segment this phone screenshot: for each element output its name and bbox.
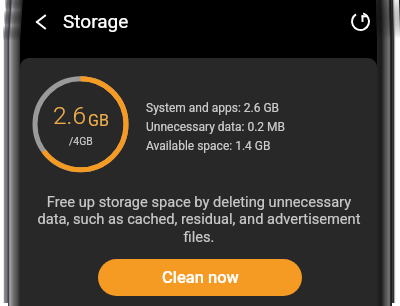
staticText: GB [88, 111, 109, 130]
button[interactable]: Refresh [344, 4, 377, 37]
button[interactable]: Back [24, 5, 57, 38]
staticText: Unnecessary data: 0.2 MB [146, 120, 285, 134]
button[interactable]: Clean now [98, 259, 302, 296]
staticText: Storage [63, 10, 129, 32]
staticText: Available space: 1.4 GB [146, 139, 271, 153]
staticText: System and apps: 2.6 GB [146, 101, 280, 115]
staticText: /4GB [69, 135, 93, 147]
staticText: Clean now [162, 268, 239, 287]
staticText: Free up storage space by deleting unnece… [34, 193, 364, 246]
staticText: 2.6 [53, 101, 87, 130]
